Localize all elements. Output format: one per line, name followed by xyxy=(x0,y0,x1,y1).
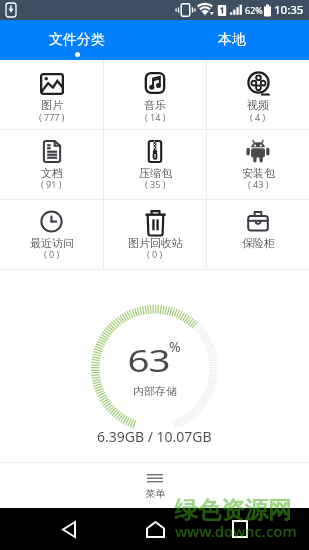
staticText: 6.39GB / 10.07GB xyxy=(97,427,212,446)
staticText: 最近访问 xyxy=(30,236,74,250)
staticText: 内部存储 xyxy=(133,384,177,398)
button[interactable]: 最近访问 xyxy=(0,200,103,269)
staticText: ( 0 ) xyxy=(147,248,163,260)
staticText: 图片回收站 xyxy=(128,236,183,250)
button[interactable]: 视频 xyxy=(207,60,309,129)
button[interactable]: 音乐 xyxy=(104,60,206,129)
staticText: ( 91 ) xyxy=(41,178,62,190)
staticText: 保险柜 xyxy=(242,236,275,250)
staticText: ( 777 ) xyxy=(39,111,65,123)
button[interactable]: 保险柜 xyxy=(207,200,309,269)
button[interactable]: 压缩包 xyxy=(104,130,206,199)
staticText: 文件分类 xyxy=(49,31,105,49)
staticText: 62% xyxy=(245,4,263,16)
staticText: ( 4 ) xyxy=(250,111,266,123)
staticText: 绿色资源网 xyxy=(174,495,292,525)
staticText: 图片 xyxy=(41,98,63,112)
button[interactable]: Back xyxy=(47,508,91,550)
staticText: 63 xyxy=(128,339,169,381)
button[interactable]: Home xyxy=(133,508,177,550)
staticText: 视频 xyxy=(247,98,269,112)
button[interactable]: 图片 xyxy=(0,60,103,129)
button[interactable]: Recents xyxy=(218,508,262,550)
staticText: 文档 xyxy=(41,166,63,180)
staticText: ( 0 ) xyxy=(44,248,60,260)
button[interactable]: 文件分类 xyxy=(0,20,154,60)
button[interactable]: 菜单 xyxy=(0,463,309,508)
staticText: % xyxy=(169,337,181,356)
staticText: ( 14 ) xyxy=(145,111,166,123)
staticText: 10:35 xyxy=(274,2,304,18)
button[interactable]: 安装包 xyxy=(207,130,309,199)
button[interactable]: 图片回收站 xyxy=(104,200,206,269)
staticText: 压缩包 xyxy=(139,166,172,180)
staticText: 安装包 xyxy=(242,166,275,180)
staticText: ( 35 ) xyxy=(145,178,166,190)
staticText: www.downc.com xyxy=(175,521,297,541)
staticText: 音乐 xyxy=(144,98,166,112)
staticText: 本地 xyxy=(218,31,246,49)
staticText: ( 43 ) xyxy=(248,178,269,190)
staticText: 菜单 xyxy=(145,487,165,500)
button[interactable]: 文档 xyxy=(0,130,103,199)
button[interactable]: 本地 xyxy=(154,20,309,60)
